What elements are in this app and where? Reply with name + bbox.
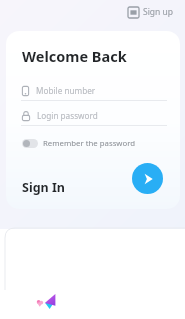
button[interactable]: Remember the password [20, 136, 138, 151]
button[interactable]: Sign In [132, 163, 163, 194]
other: Sign up [128, 7, 139, 18]
button[interactable]: Login password [6, 106, 180, 126]
button[interactable]: Mobile number [6, 81, 180, 101]
staticText: Mobile number [36, 85, 96, 96]
staticText: Welcome Back [22, 46, 127, 66]
staticText: Login password [37, 110, 98, 121]
button[interactable]: Sign In [6, 176, 71, 199]
staticText: Sign up [143, 6, 174, 18]
staticText: Remember the password [43, 138, 136, 149]
button[interactable]: Sign up [125, 4, 177, 20]
